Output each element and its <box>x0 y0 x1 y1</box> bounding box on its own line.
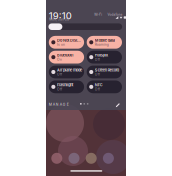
staticText: Flashlight <box>57 82 73 87</box>
staticText: 19:10 <box>49 10 72 22</box>
staticText: Mobile data <box>95 38 115 43</box>
button[interactable]: Bluetooth <box>49 51 84 64</box>
staticText: Is on <box>57 43 65 47</box>
staticText: Airplane mode <box>57 68 81 72</box>
staticText: Mon, Jan 20 <box>49 17 69 21</box>
staticText: Off <box>57 72 62 76</box>
button[interactable]: Do Not Disturb <box>49 36 84 49</box>
button[interactable]: Camera <box>86 153 97 164</box>
staticText: Hotspot <box>95 53 108 57</box>
button[interactable]: Browser <box>103 153 114 164</box>
staticText: Do Not Disturb <box>57 38 81 43</box>
button[interactable]: M A N A G E <box>49 102 69 106</box>
button[interactable]: Airplane mode <box>49 66 84 78</box>
button[interactable]: Wi-Fi <box>94 13 102 17</box>
staticText: Off <box>57 87 62 91</box>
staticText: On <box>57 57 62 61</box>
staticText: Roaming <box>95 43 109 47</box>
staticText: NFC <box>95 82 103 87</box>
button[interactable]: NFC <box>87 80 122 93</box>
staticText: Screen Record <box>95 68 119 72</box>
button[interactable]: Vodafone <box>107 13 122 17</box>
button[interactable]: Mobile data <box>87 36 122 49</box>
staticText: Off <box>95 57 100 61</box>
button[interactable]: Screen Record <box>87 66 122 78</box>
button[interactable]: Edit tiles <box>115 103 120 107</box>
staticText: M A N A G E <box>49 102 69 106</box>
staticText: Vodafone <box>107 13 122 17</box>
staticText: Off <box>95 72 100 76</box>
button[interactable]: Messages <box>68 153 79 164</box>
staticText: Bluetooth <box>57 53 73 57</box>
staticText: Off <box>95 87 100 91</box>
button[interactable]: Phone <box>51 153 62 164</box>
button[interactable]: Flashlight <box>49 80 84 93</box>
button[interactable]: Hotspot <box>87 51 122 64</box>
staticText: Wi-Fi <box>94 13 102 17</box>
